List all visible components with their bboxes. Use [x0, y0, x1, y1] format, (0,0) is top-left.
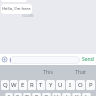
button[interactable]: This [32, 65, 64, 80]
button[interactable]: E [19, 80, 27, 90]
staticText: D [25, 93, 30, 96]
staticText: W [11, 81, 17, 89]
staticText: R [30, 81, 34, 89]
staticText: I [69, 81, 72, 89]
staticText: G [44, 93, 49, 96]
button[interactable]: O [76, 80, 85, 90]
staticText: Hello, I'm here [2, 6, 31, 12]
staticText: U [58, 81, 63, 89]
button[interactable]: K [72, 93, 81, 96]
staticText: Y [49, 81, 53, 89]
button[interactable]: S [14, 93, 22, 96]
staticText: A [7, 93, 11, 96]
button[interactable]: P [86, 80, 95, 90]
button[interactable]: J [62, 93, 71, 96]
button[interactable]: U [56, 80, 65, 90]
staticText: 10:24 AM [22, 14, 34, 18]
staticText: E [21, 81, 25, 89]
button[interactable]: R [28, 80, 36, 90]
staticText: This [43, 69, 53, 76]
button[interactable]: A [5, 93, 13, 96]
button[interactable] [9, 56, 80, 64]
button[interactable]: G [42, 93, 51, 96]
staticText: That [75, 69, 86, 76]
staticText: T [39, 81, 43, 89]
button[interactable]: W [10, 80, 18, 90]
button[interactable]: That [64, 65, 96, 80]
staticText: S [16, 93, 20, 96]
staticText: Send [82, 56, 94, 63]
button[interactable]: Send [82, 56, 94, 63]
staticText: F [35, 93, 39, 96]
button[interactable]: F [32, 93, 41, 96]
button[interactable]: Hello, I'm here [1, 4, 32, 14]
button[interactable]: Q [1, 80, 9, 90]
staticText: O [78, 81, 83, 89]
button[interactable]: Y [46, 80, 55, 90]
staticText: K [75, 93, 79, 96]
button[interactable]: T [37, 80, 45, 90]
staticText: J [66, 93, 68, 96]
staticText: H [54, 93, 59, 96]
button[interactable]: L [82, 93, 91, 96]
staticText: P [89, 81, 93, 89]
staticText: L [85, 93, 89, 96]
button[interactable]: I [66, 80, 75, 90]
button[interactable]: D [23, 93, 31, 96]
button[interactable]: H [52, 93, 61, 96]
button[interactable]: Add attachment [1, 56, 8, 63]
staticText: Q [3, 81, 8, 89]
